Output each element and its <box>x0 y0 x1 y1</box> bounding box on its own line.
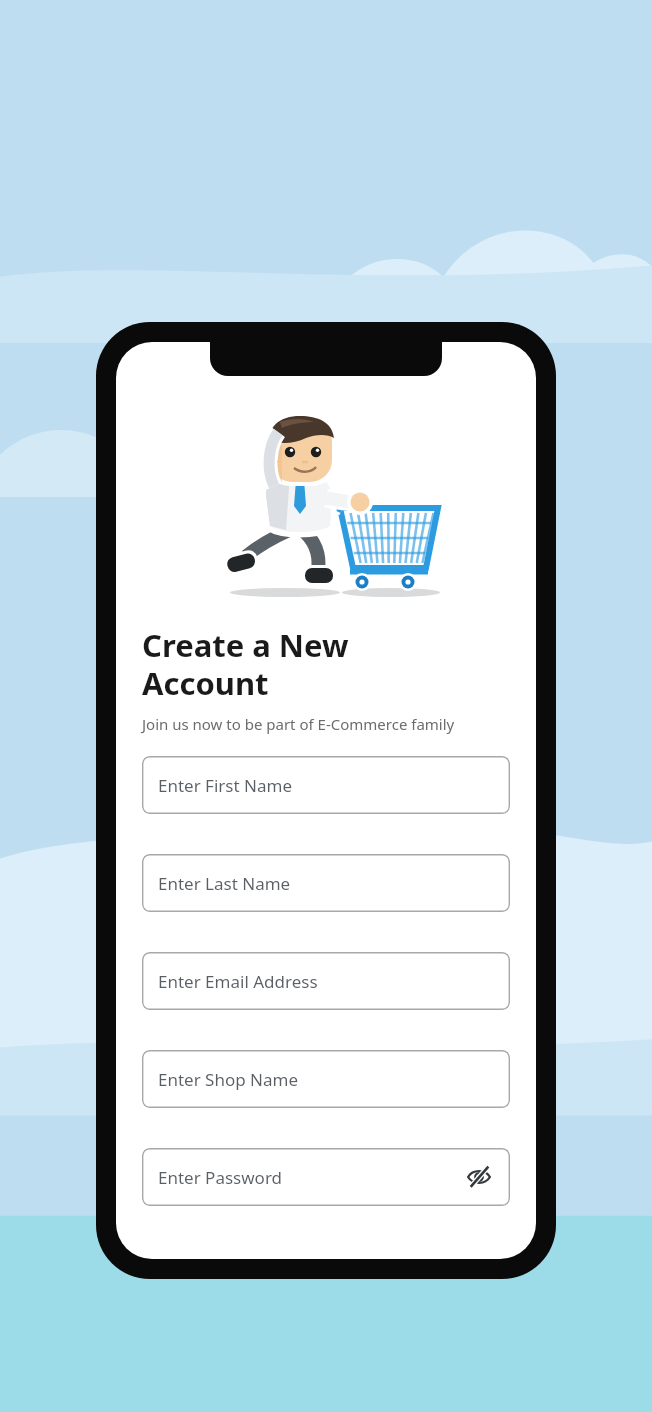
staticText: Enter Shop Name <box>158 1068 299 1091</box>
button[interactable]: Enter Last Name <box>142 854 510 912</box>
staticText: Create a New Account <box>142 624 349 704</box>
button[interactable]: Enter Email Address <box>142 952 510 1010</box>
staticText: Enter Password <box>158 1166 283 1189</box>
staticText: Enter First Name <box>158 774 292 797</box>
staticText: Enter Last Name <box>158 872 291 895</box>
staticText: Join us now to be part of E-Commerce fam… <box>142 714 455 734</box>
staticText: Enter Email Address <box>158 970 318 993</box>
button[interactable]: Enter Shop Name <box>142 1050 510 1108</box>
button[interactable]: Toggle password visibility <box>462 1160 496 1194</box>
button[interactable]: Enter Password <box>142 1148 510 1206</box>
button[interactable]: Enter First Name <box>142 756 510 814</box>
